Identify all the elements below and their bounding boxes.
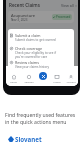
button[interactable]: Account (64, 72, 78, 86)
button[interactable]: View all (61, 3, 77, 8)
staticText: Home (10, 80, 17, 83)
staticText: Recent Claims (9, 2, 40, 8)
button[interactable]: Home (6, 72, 21, 86)
button[interactable]: Acupuncture (8, 11, 74, 23)
button[interactable]: Submit a claim (8, 33, 74, 46)
staticText: View your claims history (15, 65, 49, 69)
staticText: Review claims (15, 60, 39, 65)
staticText: Slovanet (15, 135, 42, 143)
staticText: Submit claims to get covered (15, 38, 56, 42)
button[interactable]: Claims (50, 72, 64, 86)
button[interactable]: Close quick actions (39, 72, 47, 80)
staticText: you're covered for care (15, 55, 48, 59)
staticText: Check your eligibility to see if (15, 51, 56, 55)
staticText: in the quick actions menu (5, 119, 67, 126)
staticText: Find frequently used features (5, 112, 76, 119)
staticText: Processed (56, 15, 71, 19)
button[interactable]: Services (21, 72, 36, 86)
staticText: Account (66, 80, 76, 83)
staticText: Acupuncture (11, 13, 36, 18)
staticText: Claims (53, 80, 61, 83)
staticText: Nov 3, 2023 (11, 18, 28, 22)
staticText: Check coverage (15, 46, 43, 51)
button[interactable]: Review claims (8, 60, 74, 69)
button[interactable]: Check coverage (8, 46, 74, 59)
staticText: View all (61, 3, 74, 8)
staticText: Services (24, 80, 34, 83)
staticText: Submit a claim (15, 33, 41, 38)
